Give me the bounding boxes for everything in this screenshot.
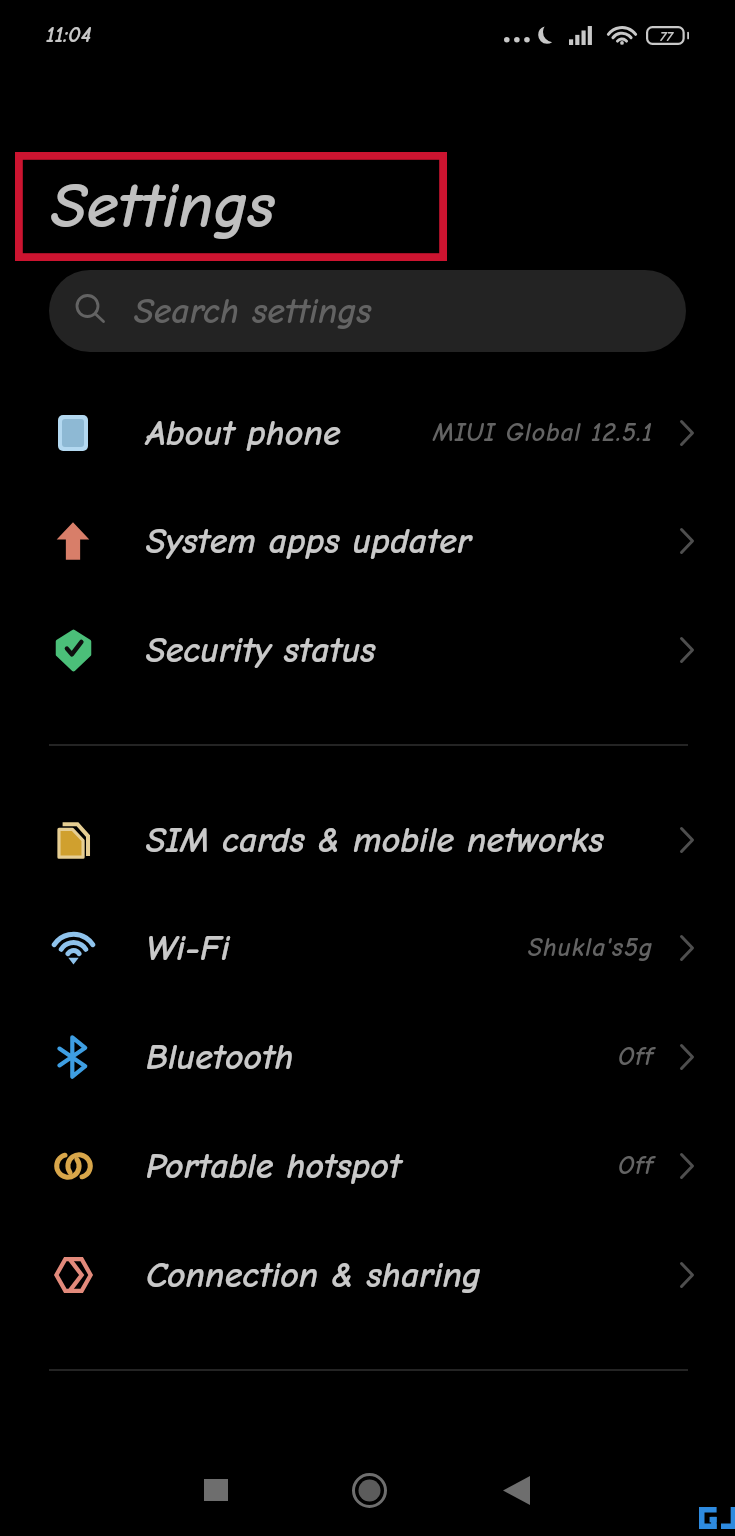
button[interactable]: Recent apps: [186, 1460, 246, 1520]
staticText: Security status: [146, 630, 376, 671]
staticText: Settings: [51, 168, 275, 243]
button[interactable]: Security status: [0, 598, 735, 702]
button[interactable]: System apps updater: [0, 489, 735, 593]
button[interactable]: SIM cards & mobile networks: [0, 788, 735, 892]
button[interactable]: Wi-Fi: [0, 896, 735, 1000]
staticText: Bluetooth: [146, 1037, 294, 1078]
staticText: Off: [618, 1042, 654, 1072]
staticText: Portable hotspot: [146, 1146, 402, 1187]
staticText: 11:04: [46, 22, 92, 47]
button[interactable]: Settings: [51, 168, 275, 243]
button[interactable]: Home: [339, 1460, 399, 1520]
staticText: Shukla's5g: [528, 933, 654, 963]
button[interactable]: Search settings: [49, 270, 686, 352]
staticText: SIM cards & mobile networks: [146, 820, 604, 861]
staticText: About phone: [146, 413, 341, 454]
button[interactable]: Bluetooth: [0, 1005, 735, 1109]
staticText: Off: [618, 1151, 654, 1181]
staticText: Wi-Fi: [146, 928, 230, 969]
staticText: Connection & sharing: [146, 1255, 481, 1296]
button[interactable]: Connection & sharing: [0, 1223, 735, 1327]
staticText: 77: [660, 28, 673, 44]
staticText: MIUI Global 12.5.1: [433, 418, 654, 448]
button[interactable]: Back: [486, 1460, 546, 1520]
button[interactable]: Portable hotspot: [0, 1114, 735, 1218]
button[interactable]: About phone: [0, 381, 735, 485]
staticText: System apps updater: [146, 521, 472, 562]
staticText: Search settings: [134, 291, 372, 332]
